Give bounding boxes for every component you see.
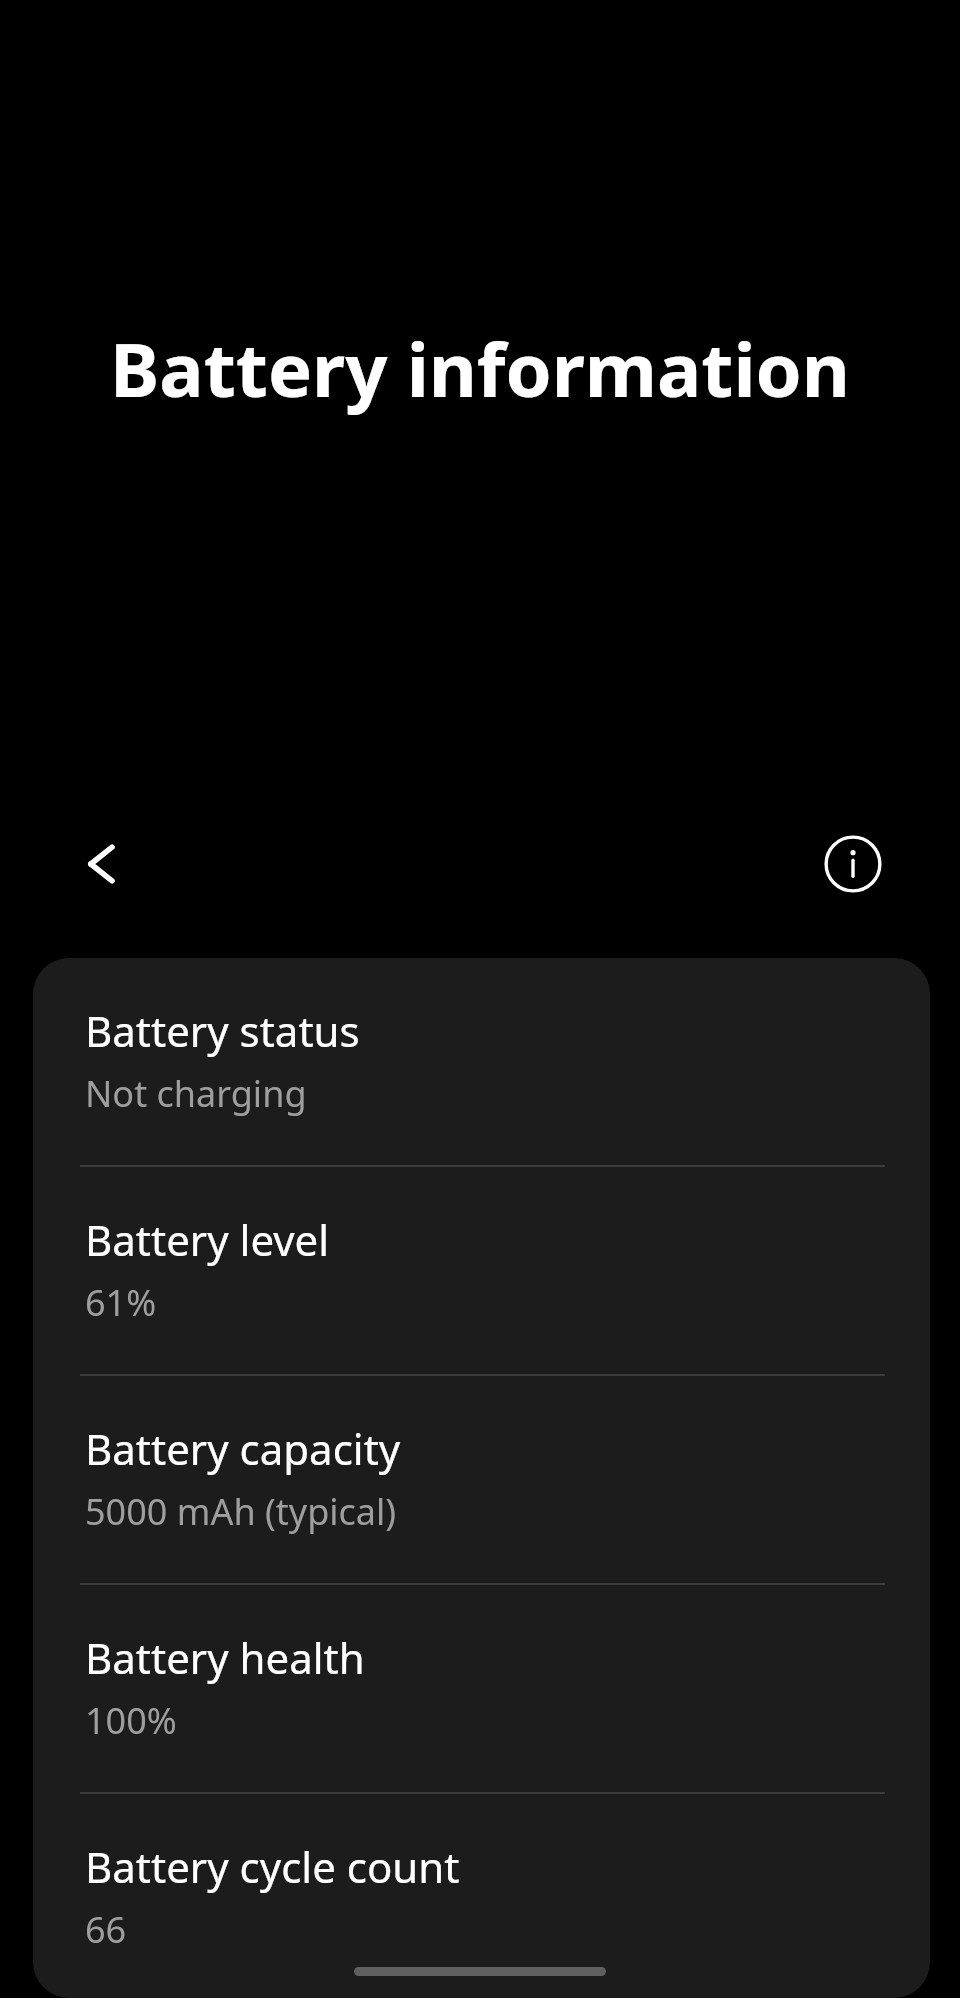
- staticText: Battery information: [110, 318, 850, 419]
- button[interactable]: Battery capacity: [33, 1376, 930, 1583]
- staticText: 66: [85, 1905, 127, 1954]
- staticText: 61%: [85, 1278, 157, 1327]
- staticText: 5000 mAh (typical): [85, 1487, 397, 1536]
- staticText: Not charging: [85, 1069, 307, 1118]
- staticText: Battery cycle count: [85, 1838, 460, 1895]
- button[interactable]: Battery cycle count: [33, 1794, 930, 1998]
- button[interactable]: Battery level: [33, 1167, 930, 1374]
- staticText: 100%: [85, 1696, 177, 1745]
- staticText: Battery level: [85, 1211, 330, 1268]
- button[interactable]: Battery status: [33, 958, 930, 1165]
- staticText: Battery health: [85, 1629, 365, 1686]
- staticText: Battery capacity: [85, 1420, 401, 1477]
- button[interactable]: Battery health: [33, 1585, 930, 1792]
- button[interactable]: Back: [46, 808, 158, 920]
- staticText: Battery status: [85, 1002, 360, 1059]
- button[interactable]: Battery information help: [797, 808, 909, 920]
